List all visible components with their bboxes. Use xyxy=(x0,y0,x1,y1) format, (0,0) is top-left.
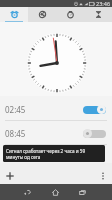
button[interactable]: Recent apps xyxy=(74,184,90,200)
button[interactable]: More options xyxy=(94,167,111,184)
staticText: 23:46 xyxy=(96,0,111,7)
staticText: 02:45 xyxy=(5,104,26,115)
button[interactable]: Back xyxy=(19,184,35,200)
staticText: 08:45 xyxy=(5,128,26,139)
staticText: Сигнал сработает через 2 часа и 59 минут… xyxy=(6,148,86,160)
button[interactable]: Add alarm xyxy=(1,167,18,184)
button[interactable]: World clock xyxy=(28,7,56,22)
button[interactable]: Toggle alarm 02:45 xyxy=(83,105,106,114)
button[interactable]: Toggle alarm 08:45 xyxy=(83,129,106,138)
button[interactable]: 02:45 xyxy=(0,97,112,121)
button[interactable]: Stopwatch xyxy=(56,7,84,22)
button[interactable]: Alarm xyxy=(0,7,28,22)
button[interactable]: 08:45 xyxy=(0,121,112,145)
button[interactable]: Timer xyxy=(84,7,112,22)
button[interactable]: Сигнал сработает через 2 часа и 59 минут… xyxy=(3,145,105,162)
button[interactable]: Home xyxy=(47,184,63,200)
